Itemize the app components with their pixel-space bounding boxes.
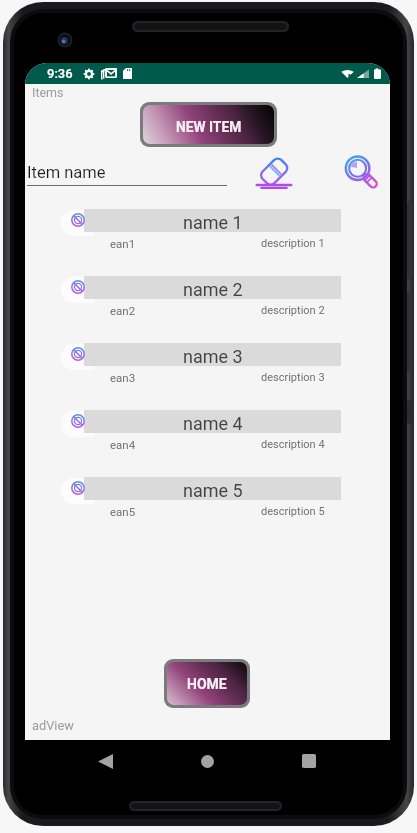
staticText: description 4 <box>261 438 325 451</box>
staticText: ean5 <box>110 505 136 518</box>
staticText: description 2 <box>261 304 325 317</box>
staticText: name 2 <box>183 279 243 300</box>
staticText: NEW ITEM <box>176 119 242 135</box>
button[interactable]: name 2 <box>25 264 390 312</box>
button[interactable]: name 4 <box>25 398 390 446</box>
button[interactable]: name 3 <box>25 331 390 379</box>
staticText: ean2 <box>110 304 136 317</box>
staticText: name 4 <box>183 413 243 434</box>
staticText: name 5 <box>183 480 243 501</box>
staticText: ean4 <box>110 438 136 451</box>
staticText: ean3 <box>110 371 136 384</box>
button[interactable]: Clear item name <box>251 151 297 197</box>
button[interactable]: name 5 <box>25 465 390 513</box>
staticText: Item name <box>27 163 106 182</box>
button[interactable]: NEW ITEM <box>143 105 274 144</box>
button[interactable]: HOME <box>167 662 247 705</box>
staticText: HOME <box>187 676 227 692</box>
button[interactable]: Back <box>93 740 117 782</box>
button[interactable]: Search <box>339 151 385 197</box>
staticText: name 1 <box>183 212 243 233</box>
staticText: description 3 <box>261 371 325 384</box>
staticText: description 1 <box>261 237 325 250</box>
staticText: 9:36 <box>47 66 73 81</box>
staticText: ean1 <box>110 237 136 250</box>
button[interactable]: Item name <box>27 163 227 193</box>
staticText: description 5 <box>261 505 325 518</box>
button[interactable]: Home <box>195 740 219 782</box>
staticText: name 3 <box>183 346 243 367</box>
button[interactable]: name 1 <box>25 197 390 245</box>
button[interactable]: Recent apps <box>297 740 321 782</box>
staticText: Items <box>32 85 64 100</box>
staticText: adView <box>32 718 74 733</box>
